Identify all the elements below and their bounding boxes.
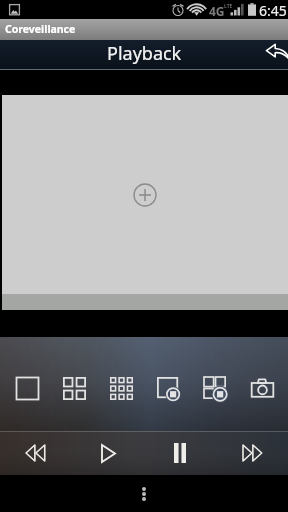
staticText: Playback	[107, 41, 182, 66]
button[interactable]: Rewind	[8, 433, 64, 473]
button[interactable]: Record quad	[198, 373, 233, 403]
button[interactable]: Single view	[10, 373, 45, 403]
button[interactable]: Record single	[151, 373, 186, 403]
staticText: Coreveillance	[5, 22, 76, 36]
staticText: 6:45	[259, 1, 287, 20]
button[interactable]: Pause	[152, 433, 208, 473]
button[interactable]: Fast forward	[224, 433, 280, 473]
button[interactable]: Nine view	[104, 373, 139, 403]
staticText: LTE	[224, 3, 233, 10]
staticText: 4G	[209, 3, 225, 19]
button[interactable]: More options	[129, 479, 159, 509]
button[interactable]: Play	[80, 433, 136, 473]
button[interactable]: Add camera	[133, 183, 157, 207]
button[interactable]: Snapshot	[245, 373, 280, 403]
button[interactable]: Quad view	[57, 373, 92, 403]
button[interactable]: Back	[262, 36, 288, 66]
